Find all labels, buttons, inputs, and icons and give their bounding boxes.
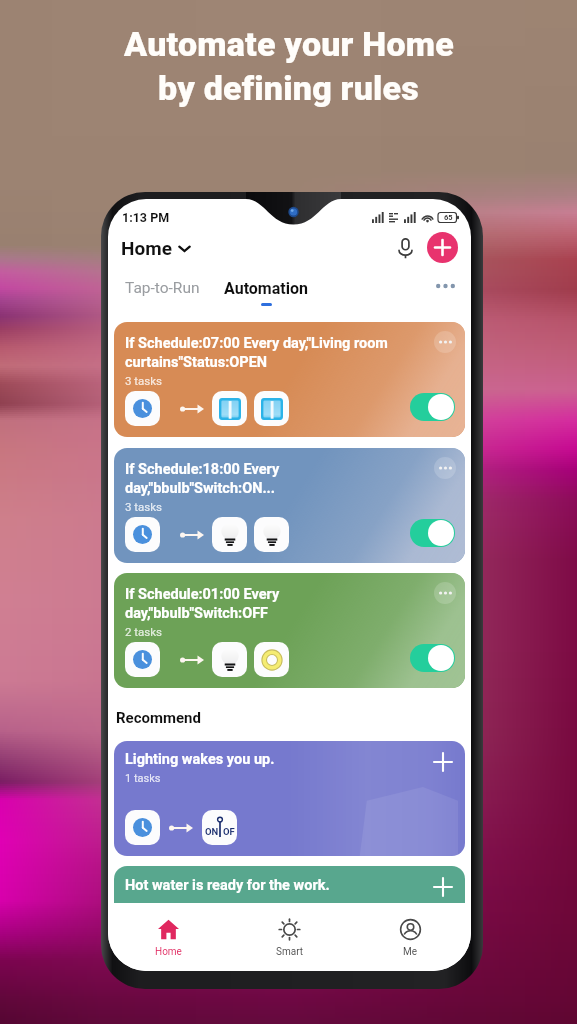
staticText: 1:13 PM bbox=[122, 210, 170, 225]
staticText: Home bbox=[121, 237, 172, 259]
staticText: If Schedule:01:00 Every day,"bbulb"Switc… bbox=[125, 586, 416, 622]
staticText: Recommend bbox=[116, 709, 201, 727]
button[interactable]: If Schedule:01:00 Every day,"bbulb"Switc… bbox=[114, 573, 465, 688]
staticText: Automation bbox=[224, 279, 308, 298]
button[interactable]: More options bbox=[430, 271, 460, 301]
button[interactable]: Add automation bbox=[432, 751, 454, 773]
button[interactable]: Add automation bbox=[432, 876, 454, 898]
staticText: Lighting wakes you up. bbox=[125, 751, 275, 768]
staticText: Me bbox=[403, 946, 418, 958]
staticText: Hot water is ready for the work. bbox=[125, 877, 330, 894]
button[interactable]: Hot water is ready for the work. bbox=[114, 866, 465, 936]
staticText: 2 tasks bbox=[125, 625, 163, 638]
button[interactable]: Me bbox=[350, 903, 471, 958]
staticText: 1 tasks bbox=[125, 772, 161, 785]
staticText: If Schedule:18:00 Every day,"bbulb"Switc… bbox=[125, 461, 416, 497]
staticText: by defining rules bbox=[158, 68, 419, 108]
staticText: If Schedule:07:00 Every day,"Living room… bbox=[125, 335, 416, 371]
button[interactable]: Automation options bbox=[434, 331, 456, 353]
staticText: ON OFF bbox=[205, 826, 235, 837]
staticText: 3 tasks bbox=[125, 500, 163, 513]
staticText: Tap-to-Run bbox=[125, 279, 200, 297]
button[interactable]: Toggle automation bbox=[410, 393, 455, 421]
button[interactable]: Home bbox=[108, 903, 229, 958]
button[interactable]: Lighting wakes you up. bbox=[114, 741, 465, 856]
button[interactable]: If Schedule:07:00 Every day,"Living room… bbox=[114, 322, 465, 437]
staticText: Smart bbox=[276, 946, 304, 958]
button[interactable]: Tap-to-Run bbox=[117, 273, 208, 303]
staticText: 3 tasks bbox=[125, 374, 163, 387]
staticText: Home bbox=[155, 946, 182, 958]
button[interactable]: Voice assistant bbox=[389, 232, 421, 264]
button[interactable]: If Schedule:18:00 Every day,"bbulb"Switc… bbox=[114, 448, 465, 563]
button[interactable]: Automation options bbox=[434, 582, 456, 604]
staticText: 65 bbox=[444, 213, 453, 222]
button[interactable]: Automation options bbox=[434, 457, 456, 479]
button[interactable]: Automation bbox=[216, 273, 316, 312]
button[interactable]: Smart bbox=[229, 903, 350, 958]
button[interactable]: Toggle automation bbox=[410, 519, 455, 547]
button[interactable]: Add bbox=[427, 232, 458, 263]
button[interactable]: Home bbox=[121, 233, 191, 263]
staticText: Automate your Home bbox=[124, 24, 454, 64]
button[interactable]: Toggle automation bbox=[410, 644, 455, 672]
